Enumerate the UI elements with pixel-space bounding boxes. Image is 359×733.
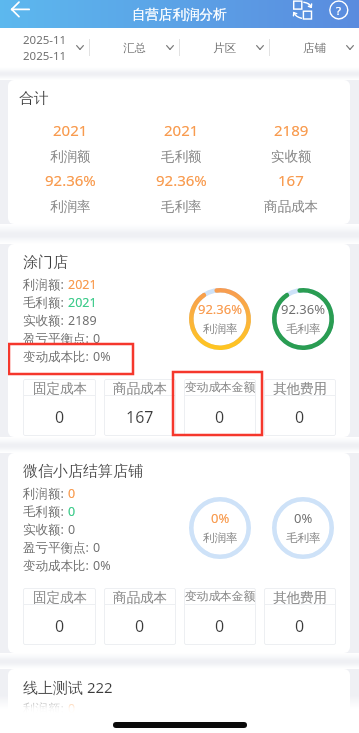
staticText: 毛利额: (23, 294, 68, 311)
staticText: 商品成本 (113, 380, 167, 397)
staticText: 商品成本 (264, 198, 318, 215)
staticText: 2025-11 (23, 48, 67, 64)
staticText: 利润额 (50, 148, 91, 165)
button[interactable]: 店铺 (270, 28, 359, 67)
staticText: 固定成本 (33, 380, 87, 397)
button[interactable]: 汇总 (90, 28, 179, 67)
staticText: 利润额: (23, 276, 68, 293)
staticText: 利润额: (23, 700, 68, 717)
button[interactable]: 线上测试 222 (8, 669, 350, 733)
staticText: 实收额 (271, 148, 312, 165)
staticText: 变动成本比: (23, 348, 93, 365)
staticText: 其他费用 (273, 589, 327, 606)
staticText: 0 (135, 615, 145, 637)
staticText: 自营店利润分析 (132, 6, 227, 23)
staticText: 实收额: (23, 312, 68, 329)
staticText: 固定成本 (33, 589, 87, 606)
staticText: 店铺 (303, 41, 326, 55)
staticText: 线上测试 222 (23, 677, 113, 697)
button[interactable]: 微信小店结算店铺 (8, 453, 350, 653)
staticText: 变动成本金额 (185, 380, 256, 395)
button[interactable]: 帮助 (324, 0, 352, 28)
staticText: 其他费用 (273, 380, 327, 397)
staticText: 0 (93, 330, 101, 347)
staticText: 0% (93, 557, 111, 574)
staticText: 利润率 (203, 531, 238, 545)
staticText: 实收额: (23, 521, 68, 538)
staticText: ? (336, 3, 341, 19)
staticText: 167 (126, 406, 154, 428)
staticText: 0 (215, 406, 225, 428)
button[interactable]: 片区 (180, 28, 269, 67)
staticText: 0 (295, 615, 305, 637)
staticText: 2021 (68, 276, 97, 293)
staticText: 0 (68, 503, 76, 520)
staticText: 涂门店 (23, 253, 68, 272)
staticText: 2025-11 (23, 32, 67, 48)
staticText: 变动成本金额 (185, 589, 256, 604)
button[interactable]: 2025-11 (0, 28, 89, 67)
staticText: 汇总 (123, 41, 146, 55)
staticText: 毛利率 (286, 322, 321, 336)
staticText: 0% (93, 348, 111, 365)
staticText: 毛利额: (23, 503, 68, 520)
staticText: 92.36% (156, 170, 207, 190)
staticText: 毛利率 (286, 531, 321, 545)
staticText: 合计 (19, 89, 49, 108)
staticText: 0% (294, 509, 313, 527)
button[interactable]: 返回 (4, 0, 34, 28)
staticText: 利润率 (50, 198, 91, 215)
staticText: 92.36% (281, 300, 326, 318)
staticText: 0 (68, 485, 76, 502)
staticText: 盈亏平衡点: (23, 539, 93, 556)
staticText: 利润额: (23, 485, 68, 502)
staticText: 盈亏平衡点: (23, 330, 93, 347)
staticText: 毛利率 (161, 198, 202, 215)
staticText: 0 (215, 615, 225, 637)
button[interactable]: 切换视图 (288, 0, 316, 28)
staticText: 0 (55, 615, 65, 637)
staticText: 2189 (68, 312, 97, 329)
staticText: 167 (278, 170, 304, 190)
staticText: 2021 (68, 294, 97, 311)
staticText: 变动成本比: (23, 557, 93, 574)
staticText: 92.36% (45, 170, 96, 190)
staticText: 0 (55, 406, 65, 428)
staticText: 商品成本 (113, 589, 167, 606)
staticText: 0 (93, 539, 101, 556)
staticText: 利润率 (203, 322, 238, 336)
staticText: 0 (68, 700, 76, 717)
staticText: 微信小店结算店铺 (23, 462, 143, 481)
staticText: 0 (68, 521, 76, 538)
staticText: 2021 (53, 120, 88, 140)
button[interactable]: 合计 (8, 80, 350, 224)
staticText: 2189 (274, 120, 309, 140)
staticText: 2021 (164, 120, 199, 140)
button[interactable]: 涂门店 (8, 244, 350, 437)
staticText: 毛利额 (161, 148, 202, 165)
staticText: 片区 (213, 41, 236, 55)
staticText: 92.36% (198, 300, 243, 318)
staticText: 0% (211, 509, 230, 527)
staticText: 0 (295, 406, 305, 428)
